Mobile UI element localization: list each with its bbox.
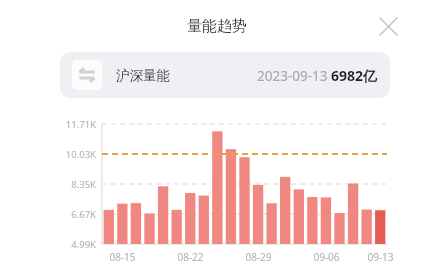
staticText: 沪深量能 (116, 67, 170, 84)
button[interactable]: Close (373, 11, 403, 41)
staticText: 4.99K (71, 238, 96, 251)
staticText: 8.35K (71, 178, 96, 191)
staticText: 10.03K (65, 148, 96, 161)
staticText: 09-06 (313, 250, 340, 264)
staticText: 08-22 (177, 250, 204, 264)
staticText: 11.71K (65, 118, 96, 131)
staticText: 08-15 (109, 250, 136, 264)
staticText: 6.67K (71, 208, 96, 221)
staticText: 量能趋势 (187, 17, 247, 36)
staticText: 6982亿 (331, 66, 378, 85)
staticText: 08-29 (245, 250, 272, 264)
staticText: 09-13 (367, 250, 394, 264)
button[interactable]: 沪深量能 (60, 52, 390, 98)
staticText: 2023-09-13 (257, 67, 331, 85)
